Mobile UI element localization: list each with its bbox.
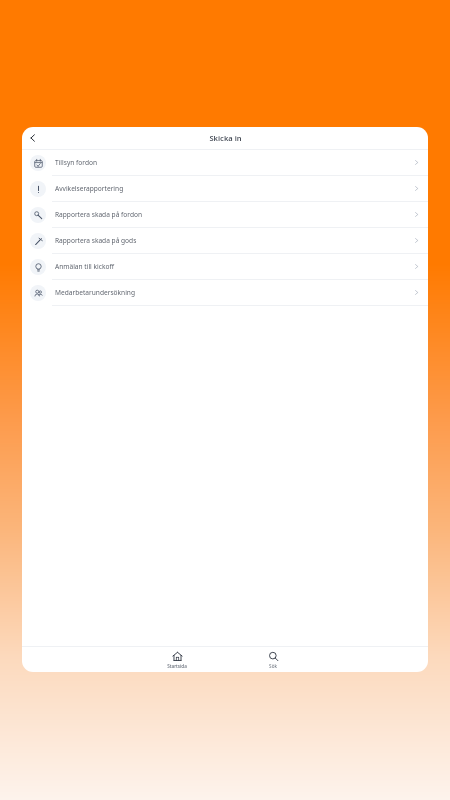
button[interactable]: Rapportera skada på gods — [22, 228, 428, 254]
staticText: Sök — [269, 663, 277, 669]
staticText: Medarbetarundersökning — [55, 288, 413, 297]
staticText: Tillsyn fordon — [55, 158, 413, 167]
button[interactable]: Back — [22, 127, 44, 149]
staticText: Startsida — [167, 663, 187, 669]
staticText: Rapportera skada på gods — [55, 236, 413, 245]
button[interactable]: Tillsyn fordon — [22, 150, 428, 176]
staticText: Rapportera skada på fordon — [55, 210, 413, 219]
staticText: Skicka in — [209, 133, 242, 143]
staticText: Anmälan till kickoff — [55, 262, 413, 271]
button[interactable]: Startsida — [129, 647, 225, 672]
button[interactable]: Medarbetarundersökning — [22, 280, 428, 306]
staticText: Avvikelserapportering — [55, 184, 413, 193]
button[interactable]: Avvikelserapportering — [22, 176, 428, 202]
button[interactable]: Anmälan till kickoff — [22, 254, 428, 280]
button[interactable]: Rapportera skada på fordon — [22, 202, 428, 228]
button[interactable]: Sök — [225, 647, 321, 672]
